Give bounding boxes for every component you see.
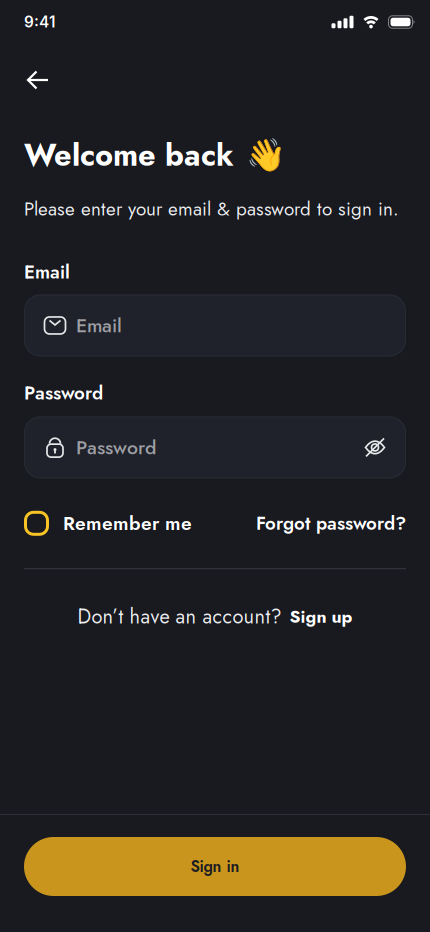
staticText: Don’t have an account? xyxy=(77,602,281,631)
staticText: Email xyxy=(76,311,122,339)
staticText: Password xyxy=(24,379,103,406)
staticText: Welcome back xyxy=(24,133,234,177)
staticText: Forgot password? xyxy=(256,510,406,537)
staticText: Sign up xyxy=(289,604,352,629)
staticText: Password xyxy=(76,433,156,461)
button[interactable]: Forgot password? xyxy=(256,510,406,537)
button[interactable]: Sign in xyxy=(0,815,430,896)
button[interactable]: Remember me xyxy=(24,509,192,537)
staticText: Remember me xyxy=(63,509,192,537)
staticText: Email xyxy=(24,258,70,285)
button[interactable]: Sign up xyxy=(289,604,352,629)
button[interactable]: Email xyxy=(0,285,430,356)
staticText: 9:41 xyxy=(24,13,55,31)
staticText: 👋 xyxy=(246,136,286,174)
button[interactable] xyxy=(0,44,49,89)
staticText: Sign in xyxy=(190,855,239,878)
button[interactable] xyxy=(364,436,406,458)
button[interactable]: Password xyxy=(0,406,430,478)
staticText: Please enter your email & password to si… xyxy=(24,195,399,222)
